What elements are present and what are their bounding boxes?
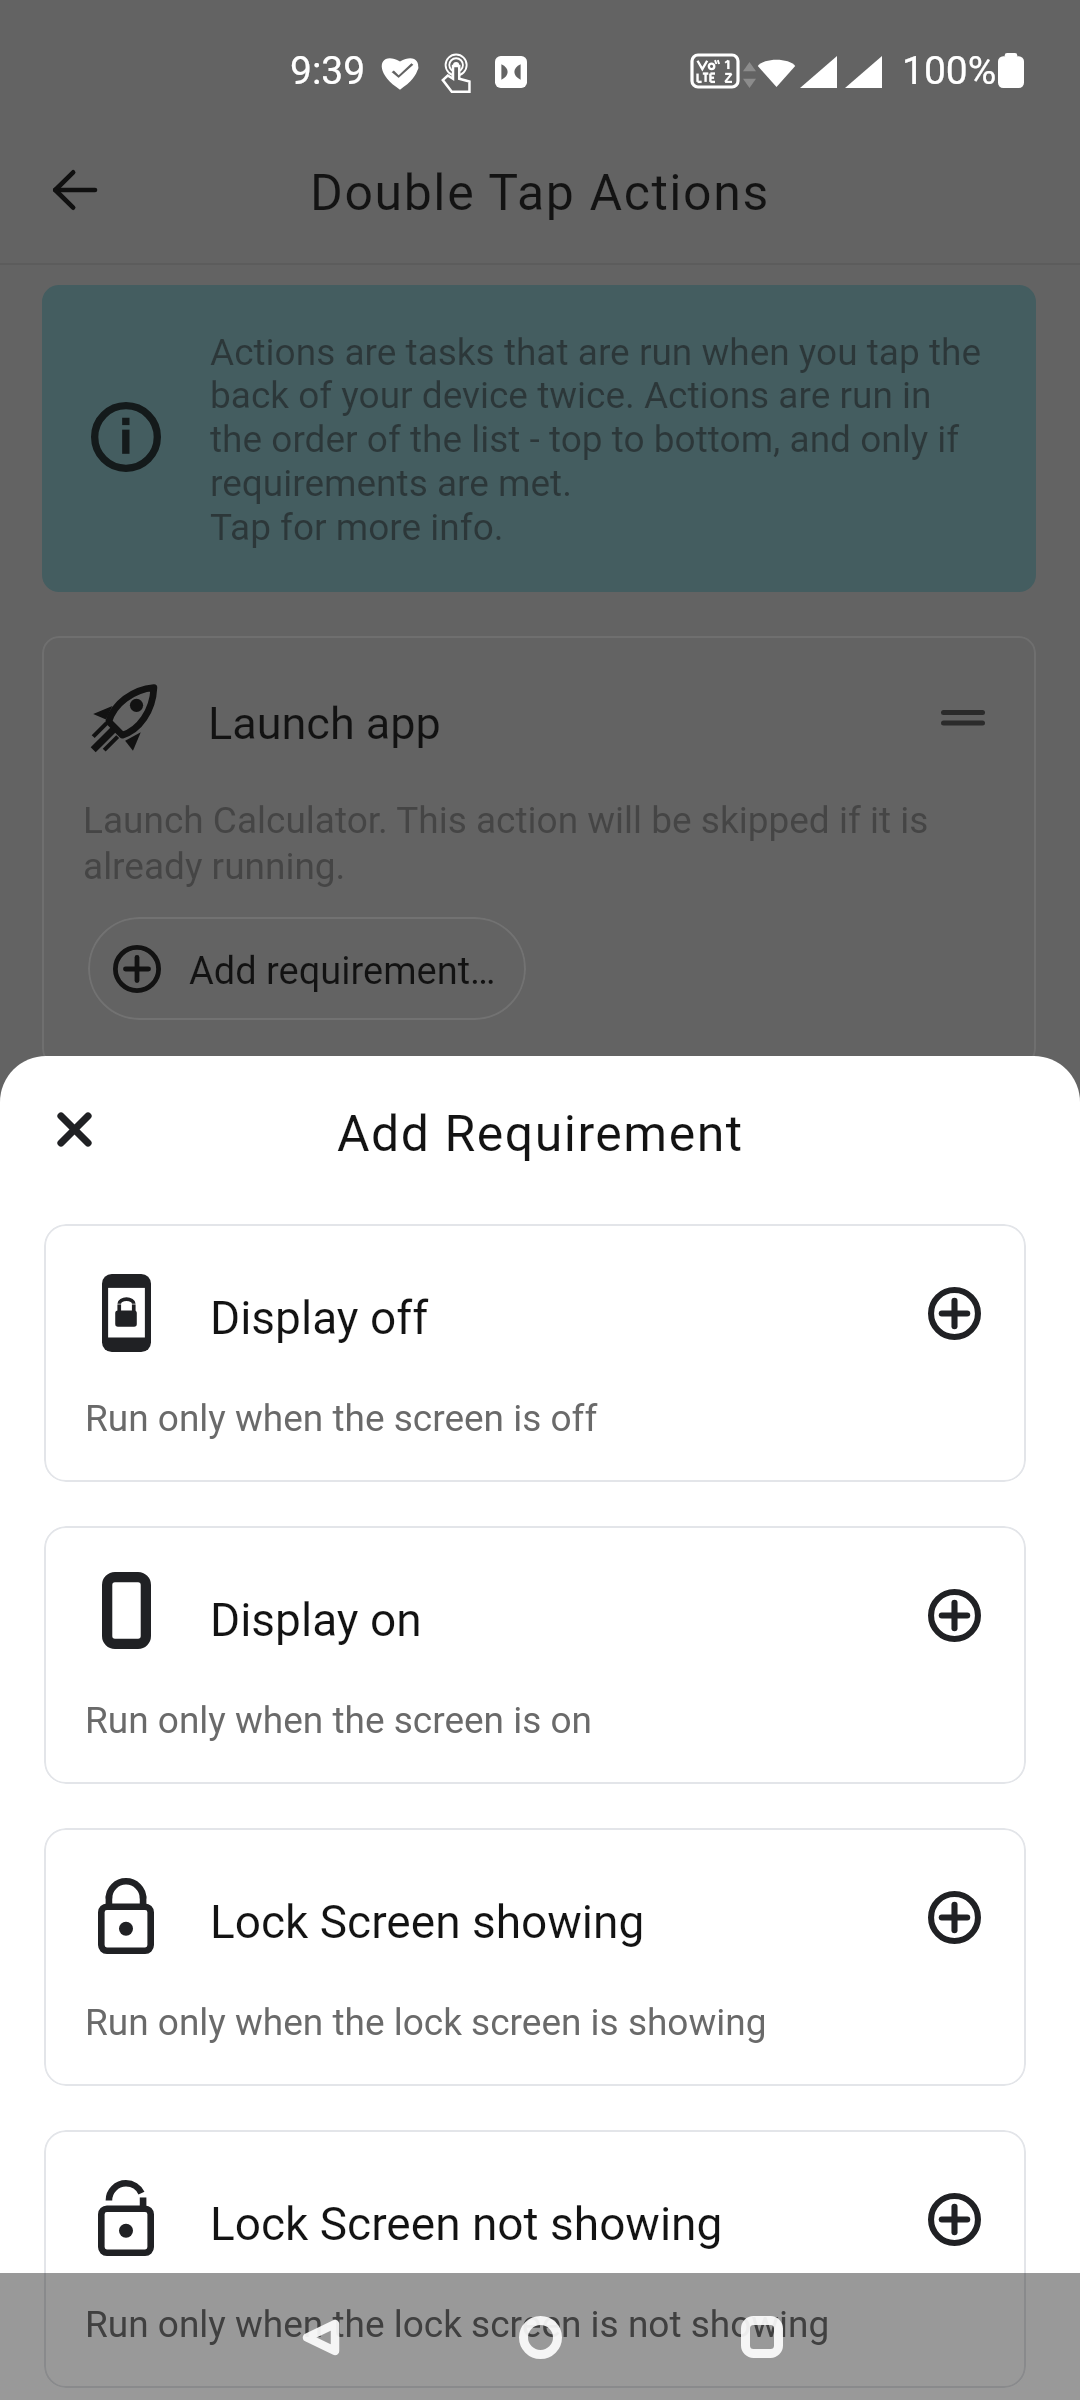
button[interactable]: Add Lock Screen not showing (910, 2175, 998, 2263)
staticText: Run only when the lock screen is not sho… (85, 2303, 830, 2346)
staticText: Launch app (208, 697, 441, 750)
staticText: Actions are tasks that are run when you … (210, 331, 982, 549)
staticText: Double Tap Actions (310, 164, 770, 223)
staticText: Add Requirement (337, 1105, 744, 1164)
staticText: 100% (902, 48, 997, 94)
staticText: Run only when the screen is off (85, 1397, 598, 1440)
staticText: Lock Screen not showing (210, 2197, 723, 2251)
button[interactable]: Add requirement… (88, 917, 526, 1020)
button[interactable]: Add Display off (910, 1269, 998, 1357)
button[interactable]: Display on (44, 1526, 1026, 1784)
button[interactable]: Recent apps (708, 2283, 816, 2391)
staticText: Lock Screen showing (210, 1895, 645, 1949)
staticText: Display off (210, 1291, 429, 1345)
button[interactable]: Lock Screen not showing (44, 2130, 1026, 2388)
button[interactable]: Home (486, 2283, 594, 2391)
button[interactable]: Add Lock Screen showing (910, 1873, 998, 1961)
button[interactable]: Lock Screen showing (44, 1828, 1026, 2086)
button[interactable]: Back (266, 2283, 374, 2391)
staticText: Launch Calculator. This action will be s… (83, 799, 929, 888)
staticText: Display on (210, 1593, 422, 1647)
button[interactable]: Actions are tasks that are run when you … (42, 285, 1036, 592)
staticText: Run only when the screen is on (85, 1699, 593, 1742)
staticText: Run only when the lock screen is showing (85, 2001, 767, 2044)
staticText: 9:39 (290, 48, 366, 94)
button[interactable]: Display off (44, 1224, 1026, 1482)
staticText: Add requirement… (189, 949, 496, 994)
button[interactable]: Add Display on (910, 1571, 998, 1659)
button[interactable]: Back (26, 142, 122, 238)
button[interactable]: Close (26, 1081, 122, 1177)
